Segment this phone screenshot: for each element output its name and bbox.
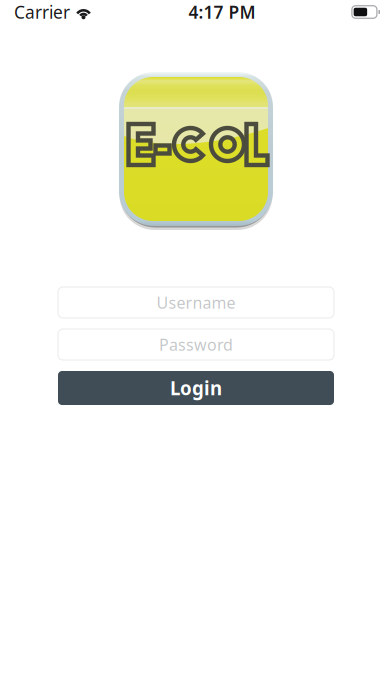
button[interactable]: Login bbox=[58, 371, 334, 405]
staticText: 4:17 PM bbox=[188, 0, 255, 23]
staticText: Username bbox=[156, 292, 235, 313]
staticText: Password bbox=[159, 334, 233, 355]
button[interactable]: Password bbox=[58, 329, 334, 360]
staticText: Login bbox=[170, 376, 222, 400]
button[interactable]: Username bbox=[58, 287, 334, 318]
staticText: Carrier bbox=[14, 0, 70, 23]
